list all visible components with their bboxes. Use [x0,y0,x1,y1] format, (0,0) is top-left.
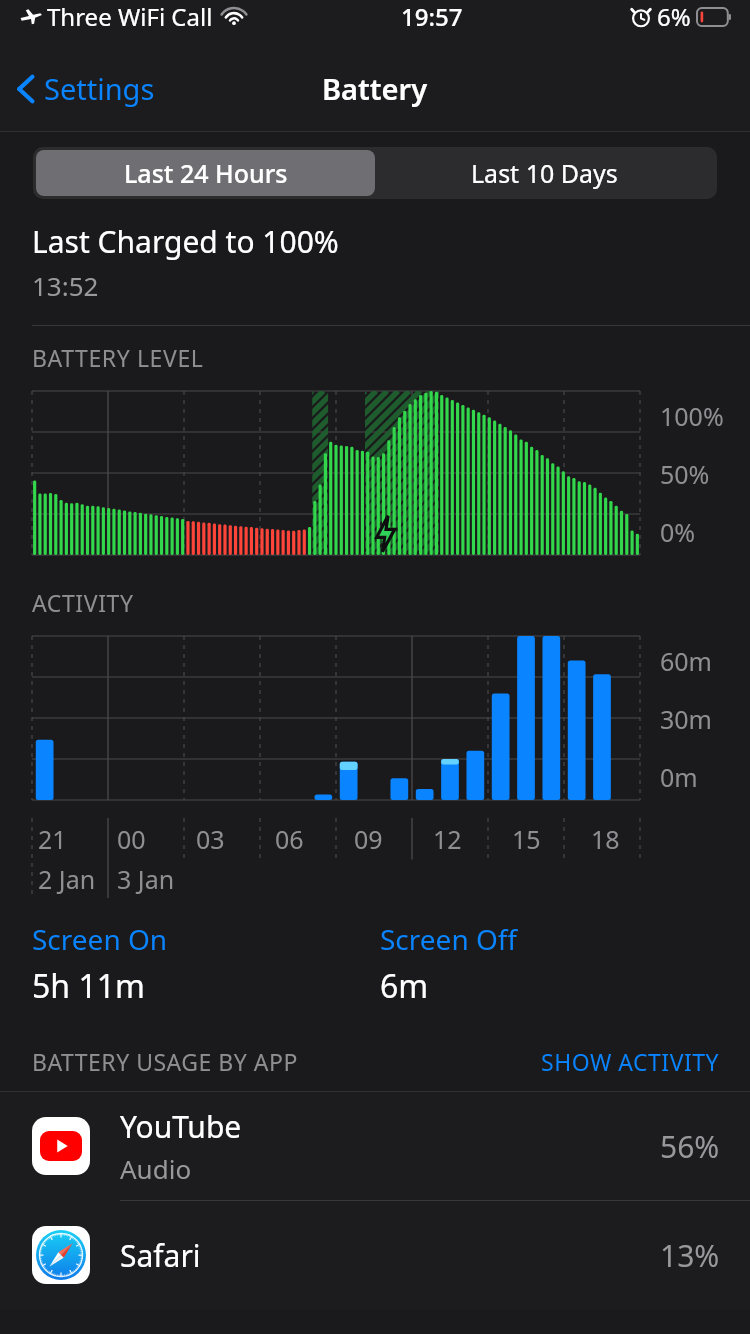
staticText: Three WiFi Call [47,0,213,33]
staticText: 15 [512,822,541,856]
staticText: SHOW ACTIVITY [541,1046,720,1077]
staticText: BATTERY USAGE BY APP [32,1046,298,1077]
button[interactable]: Safari [0,1201,750,1309]
staticText: 3 Jan [117,862,175,896]
staticText: 09 [354,822,383,856]
staticText: 30m [660,702,712,736]
other: Safari [32,1226,90,1284]
staticText: Safari [120,1235,201,1276]
staticText: ACTIVITY [32,587,134,618]
staticText: Last 24 Hours [124,156,288,190]
staticText: 03 [196,822,225,856]
staticText: 100% [660,399,724,433]
button[interactable]: Settings [0,61,167,116]
button[interactable]: Last 10 Days [375,150,714,196]
staticText: Screen On [32,920,168,958]
button[interactable]: SHOW ACTIVITY [541,1046,720,1077]
button[interactable]: YouTube [0,1092,750,1200]
staticText: 0% [660,515,696,549]
staticText: Screen Off [380,920,518,958]
staticText: 13:52 [32,268,99,303]
staticText: 12 [433,822,462,856]
staticText: Audio [120,1151,192,1186]
button[interactable]: Last 24 Hours [36,150,375,196]
staticText: 6% [657,0,691,33]
staticText: 13% [660,1235,720,1276]
staticText: 21 [38,822,67,856]
staticText: 0m [660,760,698,794]
staticText: 6m [380,964,429,1008]
staticText: 18 [591,822,620,856]
staticText: Settings [44,69,155,108]
staticText: Last Charged to 100% [32,221,339,262]
staticText: YouTube [120,1106,242,1147]
staticText: BATTERY LEVEL [32,342,204,373]
staticText: 50% [660,457,710,491]
staticText: 56% [660,1126,720,1167]
staticText: 60m [660,644,712,678]
staticText: 5h 11m [32,964,145,1008]
other: YouTube [32,1117,90,1175]
staticText: Battery [322,69,428,108]
staticText: 06 [275,822,304,856]
staticText: Last 10 Days [471,156,618,190]
staticText: 2 Jan [38,862,96,896]
staticText: 19:57 [401,0,463,33]
staticText: 00 [117,822,146,856]
